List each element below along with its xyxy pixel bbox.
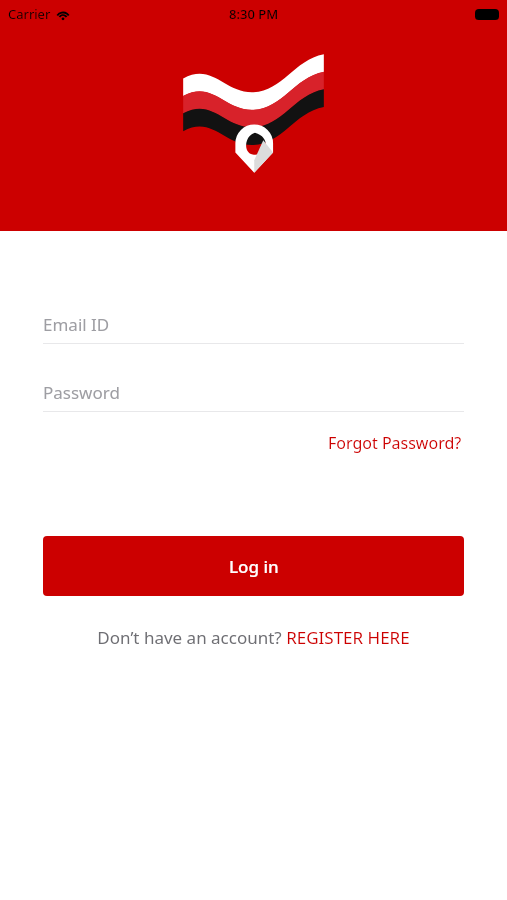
staticText: Log in — [229, 555, 279, 578]
button[interactable]: Password — [43, 377, 464, 412]
staticText: Password — [43, 381, 120, 404]
other: Battery full — [475, 9, 499, 20]
staticText: Forgot Password? — [328, 432, 462, 454]
other: Wi-Fi signal — [56, 9, 70, 20]
staticText: Don’t have an account? REGISTER HERE — [97, 626, 410, 649]
staticText: Email ID — [43, 313, 110, 336]
button[interactable]: Log in — [43, 536, 464, 596]
button[interactable]: Don’t have an account? REGISTER HERE — [43, 626, 464, 649]
staticText: 8:30 PM — [229, 5, 279, 23]
staticText: Carrier — [8, 5, 51, 23]
button[interactable]: Forgot Password? — [326, 428, 464, 458]
button[interactable]: Email ID — [43, 309, 464, 344]
